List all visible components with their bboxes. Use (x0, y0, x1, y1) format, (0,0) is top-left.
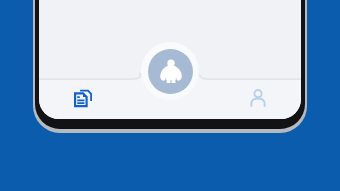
button[interactable]: Profile (214, 77, 301, 119)
button[interactable]: Documents (39, 77, 127, 119)
button[interactable]: Body scan (148, 49, 193, 94)
